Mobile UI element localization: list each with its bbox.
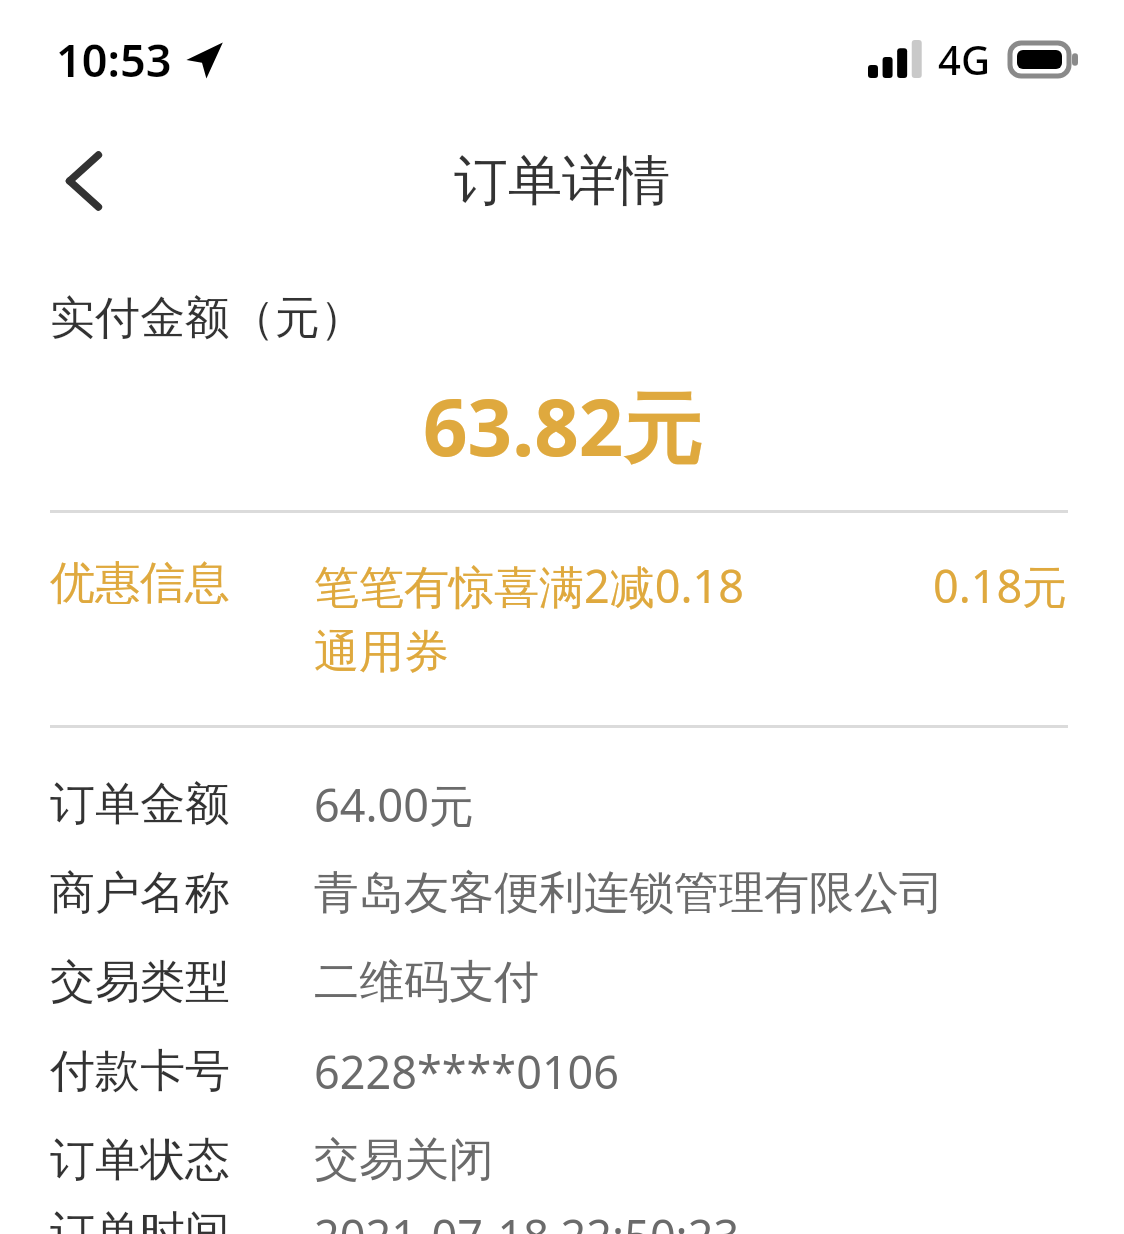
staticText: 笔笔有惊喜满2减0.18 [314, 555, 745, 616]
staticText: 4G [938, 32, 990, 86]
staticText: 付款卡号 [50, 1043, 314, 1100]
button[interactable]: 付款卡号 [0, 1027, 1124, 1116]
button[interactable]: 订单状态 [0, 1116, 1124, 1205]
staticText: 商户名称 [50, 865, 314, 922]
staticText: 订单详情 [454, 147, 670, 215]
staticText: 优惠信息 [50, 555, 314, 612]
staticText: 青岛友客便利连锁管理有限公司 [314, 865, 944, 922]
staticText: 二维码支付 [314, 954, 539, 1011]
button[interactable]: 交易类型 [0, 938, 1124, 1027]
button[interactable]: Back [30, 127, 138, 235]
staticText: 订单时间 [50, 1205, 314, 1234]
button[interactable]: 优惠信息 [0, 555, 1124, 681]
button[interactable]: 订单时间 [0, 1205, 1124, 1234]
staticText: 10:53 [56, 29, 172, 90]
staticText: 实付金额（元） [50, 290, 365, 347]
staticText: 63.82元 [423, 373, 702, 480]
staticText: 通用券 [314, 624, 449, 681]
button[interactable]: 商户名称 [0, 849, 1124, 938]
staticText: 64.00元 [314, 774, 475, 835]
staticText: 订单金额 [50, 776, 314, 833]
staticText: 交易关闭 [314, 1132, 494, 1189]
staticText: 6228****0106 [314, 1041, 620, 1102]
button[interactable]: 订单金额 [0, 760, 1124, 849]
staticText: 0.18元 [933, 555, 1068, 616]
staticText: 订单状态 [50, 1132, 314, 1189]
staticText: 2021-07-18 22:50:23 [314, 1205, 740, 1234]
staticText: 交易类型 [50, 954, 314, 1011]
